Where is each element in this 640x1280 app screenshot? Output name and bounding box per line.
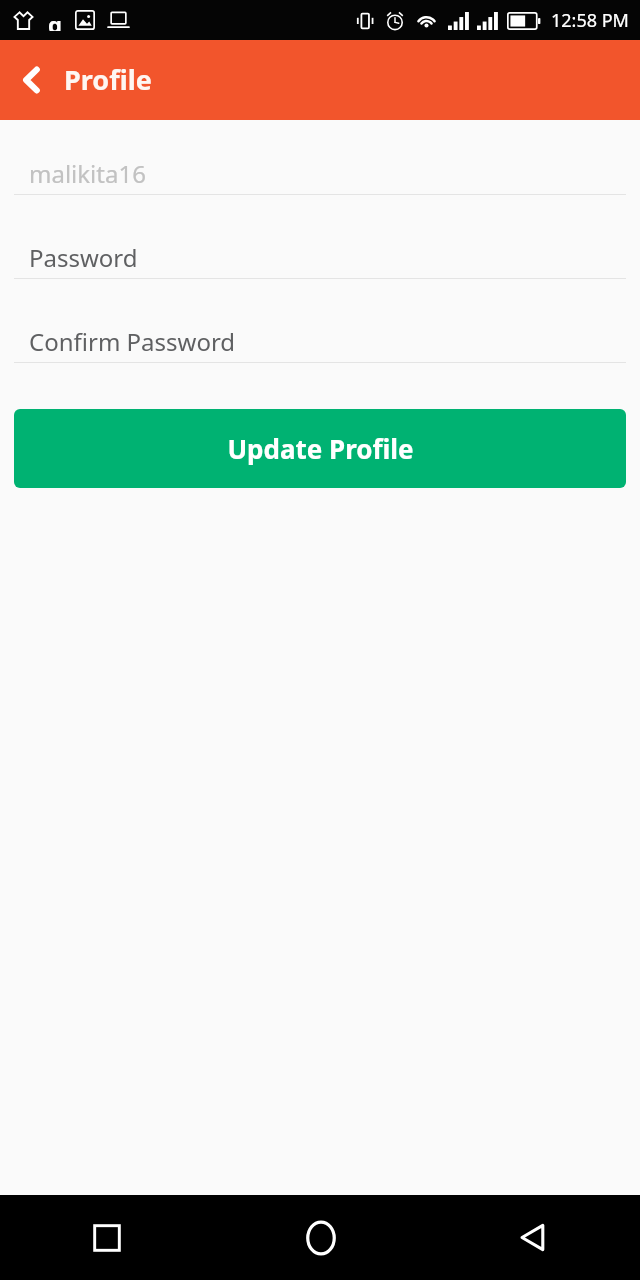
button[interactable]: Password [14, 236, 626, 279]
staticText: Password [29, 241, 138, 274]
button[interactable]: Back [0, 40, 64, 120]
button[interactable]: Update Profile [14, 409, 626, 488]
staticText: 12:58 PM [551, 8, 629, 33]
button[interactable]: Recent apps [0, 1195, 214, 1280]
button[interactable]: malikita16 [14, 152, 626, 195]
staticText: Confirm Password [29, 325, 236, 358]
staticText: Update Profile [227, 431, 414, 466]
button[interactable]: Confirm Password [14, 320, 626, 363]
staticText: Profile [64, 61, 152, 98]
button[interactable]: Home [214, 1195, 427, 1280]
staticText: malikita16 [29, 157, 146, 190]
staticText: g [48, 9, 62, 31]
button[interactable]: Back [427, 1195, 640, 1280]
